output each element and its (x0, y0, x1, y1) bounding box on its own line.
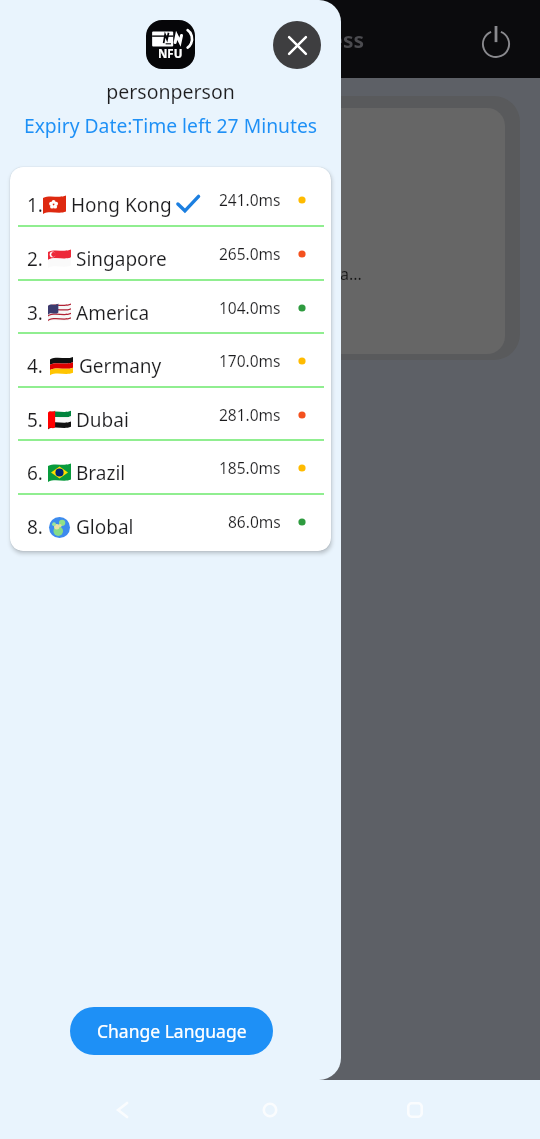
button[interactable]: 3. (10, 281, 331, 333)
staticText: 3. (27, 300, 43, 326)
staticText: 4. (27, 353, 43, 379)
staticText: 86.0ms (228, 511, 281, 532)
button[interactable]: 4. (10, 334, 331, 386)
staticText: 185.0ms (219, 457, 281, 478)
button[interactable]: Change Language (70, 1007, 273, 1055)
button[interactable]: 8. (10, 495, 331, 547)
button[interactable]: 1. (10, 173, 331, 225)
staticText: 104.0ms (219, 297, 281, 318)
staticText: Brazil (76, 460, 126, 486)
staticText: 2. (27, 246, 43, 272)
button[interactable]: Home (253, 1093, 287, 1127)
button[interactable]: Recents (398, 1093, 432, 1127)
staticText: 265.0ms (219, 243, 281, 264)
staticText: Germany (79, 353, 162, 379)
staticText: Global (76, 514, 134, 540)
staticText: Dubai (76, 407, 129, 433)
button[interactable]: Power (476, 21, 516, 61)
staticText: 8. (27, 514, 43, 540)
staticText: America (76, 300, 150, 326)
button[interactable]: 6. (10, 441, 331, 493)
staticText: 1. (27, 192, 43, 218)
button[interactable]: Close (273, 21, 321, 69)
button[interactable]: 2. (10, 227, 331, 279)
staticText: Expiry Date:Time left 27 Minutes (0, 112, 341, 138)
staticText: 5. (27, 407, 43, 433)
button[interactable]: 5. (10, 388, 331, 440)
staticText: Change Language (97, 1019, 247, 1043)
staticText: 241.0ms (219, 189, 281, 210)
staticText: VPN Express (235, 26, 364, 55)
staticText: 170.0ms (219, 350, 281, 371)
staticText: NFU (158, 46, 183, 62)
button[interactable]: Back (105, 1093, 139, 1127)
staticText: personperson (0, 78, 341, 105)
staticText: Singapore (76, 246, 167, 272)
staticText: 6. (27, 460, 43, 486)
staticText: a... (340, 263, 362, 285)
staticText: 281.0ms (219, 404, 281, 425)
button[interactable]: App icon (146, 20, 195, 69)
staticText: Hong Kong (71, 192, 172, 218)
